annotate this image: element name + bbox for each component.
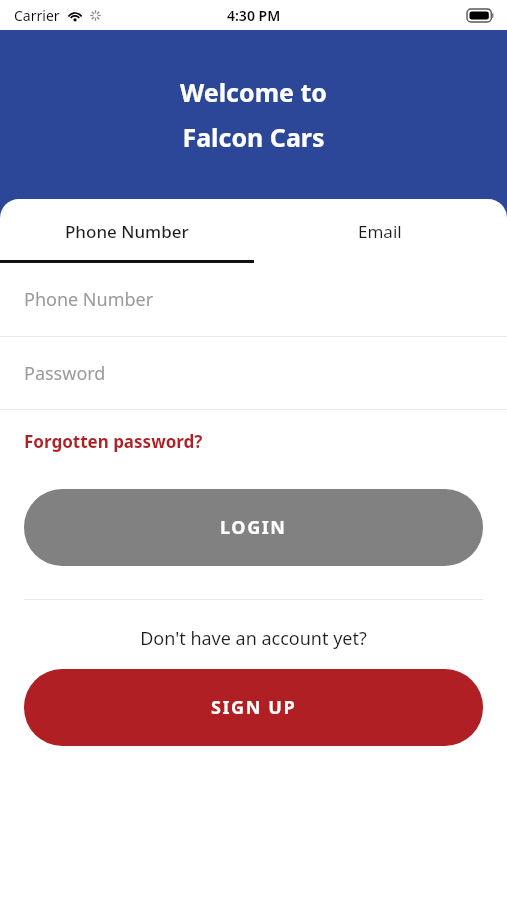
button[interactable]: Password: [0, 337, 507, 409]
button[interactable]: LOGIN: [24, 489, 483, 566]
button[interactable]: SIGN UP: [24, 669, 483, 746]
staticText: Password: [24, 361, 106, 386]
staticText: 4:30 PM: [227, 6, 281, 25]
button[interactable]: Email: [253, 199, 507, 263]
button[interactable]: Phone Number: [0, 199, 253, 263]
staticText: Welcome to: [180, 75, 327, 109]
button[interactable]: Phone Number: [0, 263, 507, 336]
staticText: Phone Number: [65, 220, 189, 243]
staticText: LOGIN: [220, 515, 287, 540]
staticText: Forgotten password?: [24, 430, 203, 453]
staticText: Don't have an account yet?: [140, 626, 367, 651]
staticText: Email: [358, 220, 402, 243]
button[interactable]: Forgotten password?: [24, 430, 203, 453]
staticText: Falcon Cars: [182, 120, 325, 154]
staticText: SIGN UP: [211, 695, 297, 720]
staticText: Phone Number: [24, 287, 154, 312]
staticText: Carrier: [14, 6, 60, 25]
